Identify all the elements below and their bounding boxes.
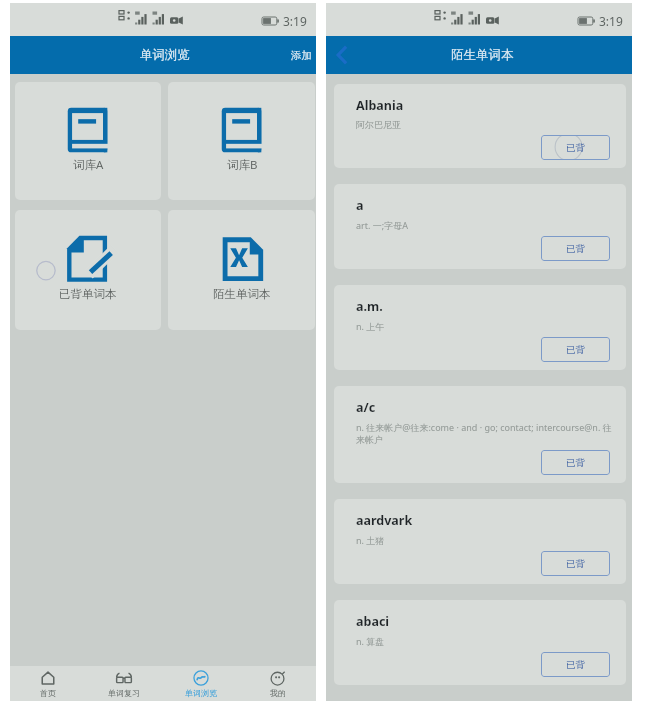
staticText: 已背 (566, 659, 585, 671)
button[interactable]: a.m. (334, 285, 626, 370)
staticText: 已背 (566, 457, 585, 469)
staticText: 已背 (566, 344, 585, 356)
button[interactable]: 已背 (541, 135, 610, 160)
button[interactable]: 首页 (10, 666, 86, 701)
button[interactable]: abaci (334, 600, 626, 685)
button[interactable]: 词库B (168, 82, 315, 200)
button[interactable]: Back (326, 36, 364, 74)
staticText: 单词浏览 (185, 688, 217, 698)
button[interactable]: 单词浏览 (162, 666, 239, 701)
button[interactable]: 已背 (541, 652, 610, 677)
staticText: 我的 (270, 688, 286, 698)
staticText: abaci (356, 613, 390, 630)
staticText: 陌生单词本 (213, 287, 271, 301)
staticText: a.m. (356, 298, 383, 315)
staticText: 已背 (566, 142, 585, 154)
staticText: Albania (356, 97, 404, 114)
staticText: n. 上午 (356, 320, 385, 332)
staticText: n. 往来帐户@往来:come · and · go; contact; int… (356, 421, 620, 445)
staticText: 阿尔巴尼亚 (356, 119, 401, 130)
button[interactable]: 已背 (541, 337, 610, 362)
staticText: 已背 (566, 558, 585, 570)
button[interactable]: 已背单词本 (15, 210, 161, 330)
staticText: 首页 (40, 688, 56, 698)
staticText: 3:19 (599, 13, 623, 29)
staticText: aardvark (356, 512, 413, 529)
staticText: 词库A (73, 157, 104, 173)
staticText: 3:19 (283, 13, 307, 29)
button[interactable]: 已背 (541, 551, 610, 576)
staticText: a (356, 197, 364, 214)
staticText: 单词浏览 (140, 47, 190, 63)
staticText: 已背 (566, 243, 585, 255)
button[interactable]: 单词复习 (86, 666, 162, 701)
button[interactable]: Albania (334, 84, 626, 168)
staticText: 添加 (291, 49, 312, 62)
staticText: 已背单词本 (59, 287, 117, 301)
button[interactable]: 已背 (541, 450, 610, 475)
button[interactable]: aardvark (334, 499, 626, 584)
staticText: a/c (356, 399, 376, 416)
button[interactable]: 我的 (239, 666, 316, 701)
staticText: 词库B (227, 157, 258, 173)
staticText: 单词复习 (108, 688, 140, 698)
button[interactable]: 词库A (15, 82, 161, 200)
button[interactable]: 陌生单词本 (168, 210, 315, 330)
button[interactable]: a/c (334, 386, 626, 483)
button[interactable]: a (334, 184, 626, 269)
staticText: 陌生单词本 (451, 47, 514, 63)
button[interactable]: 添加 (281, 40, 316, 71)
button[interactable]: 已背 (541, 236, 610, 261)
staticText: art. 一;字母A (356, 219, 408, 231)
staticText: n. 算盘 (356, 635, 385, 647)
staticText: n. 土猪 (356, 534, 385, 546)
